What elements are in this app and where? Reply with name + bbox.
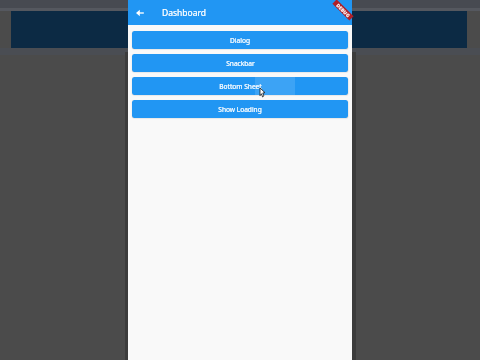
staticText: Dialog bbox=[230, 36, 250, 45]
button[interactable]: Dialog bbox=[132, 31, 348, 49]
staticText: Show Loading bbox=[218, 105, 262, 114]
staticText: DEBUG bbox=[335, 2, 351, 18]
staticText: Snackbar bbox=[226, 59, 255, 68]
button[interactable]: Snackbar bbox=[132, 54, 348, 72]
button[interactable]: Back bbox=[133, 6, 146, 19]
button[interactable]: Bottom Sheet bbox=[132, 77, 348, 95]
button[interactable]: Show Loading bbox=[132, 100, 348, 118]
staticText: Dashboard bbox=[162, 7, 207, 19]
staticText: Bottom Sheet bbox=[219, 82, 262, 91]
